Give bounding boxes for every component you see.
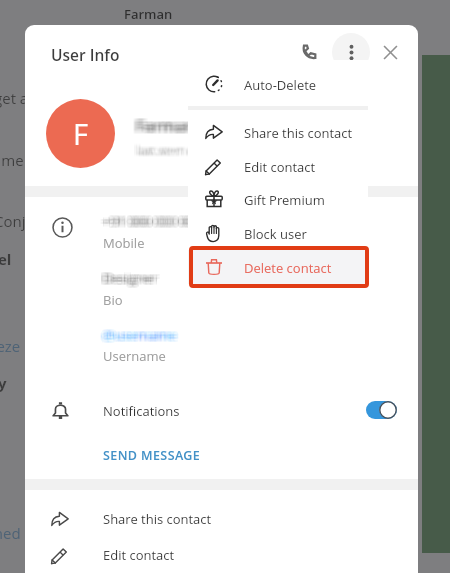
staticText: Designer — [102, 270, 156, 288]
staticText: Farman Ali — [134, 116, 218, 138]
staticText: last seen recently — [137, 141, 234, 157]
staticText: @username — [106, 328, 180, 346]
staticText: Designer — [102, 271, 156, 289]
button[interactable]: Edit contact — [25, 537, 418, 573]
staticText: +91 000 000 00 — [100, 210, 192, 228]
staticText: last seen recently — [139, 143, 236, 159]
staticText: last seen recently — [135, 144, 232, 160]
staticText: last seen recently — [139, 141, 236, 157]
staticText: Farman Ali — [136, 116, 220, 138]
staticText: Farman Ali — [139, 114, 223, 136]
button[interactable]: Delete contact — [188, 250, 368, 284]
staticText: +91 000 000 00 — [104, 212, 196, 230]
staticText: +91 000 000 00 — [102, 214, 194, 232]
staticText: +91 000 000 00 — [100, 214, 192, 232]
staticText: @username — [101, 327, 175, 345]
button[interactable]: More options — [332, 33, 370, 71]
button[interactable]: Block user — [188, 216, 368, 250]
staticText: Designer — [101, 267, 155, 285]
button[interactable]: Auto-Delete — [188, 67, 368, 101]
staticText: last seen recently — [139, 142, 236, 158]
button[interactable]: Edit contact — [188, 149, 368, 183]
staticText: ined — [0, 523, 21, 543]
staticText: last seen recently — [139, 141, 236, 157]
staticText: Designer — [106, 269, 160, 287]
button[interactable]: Notifications — [25, 387, 418, 433]
staticText: Farman Ali — [137, 115, 221, 137]
button[interactable]: Close — [372, 34, 408, 70]
staticText: +91 000 000 00 — [105, 211, 197, 229]
staticText: @username — [101, 325, 175, 343]
staticText: @username — [106, 327, 180, 345]
staticText: +91 000 000 00 — [102, 213, 194, 231]
staticText: Farman Ali — [135, 116, 219, 138]
staticText: @username — [102, 327, 176, 345]
staticText: last seen recently — [133, 142, 230, 158]
staticText: Farman Ali — [138, 116, 222, 138]
staticText: Designer — [105, 268, 159, 286]
staticText: @username — [100, 324, 174, 342]
staticText: +91 000 000 00 — [101, 213, 193, 231]
staticText: Designer — [101, 268, 155, 286]
staticText: last seen recently — [138, 144, 235, 160]
staticText: Farman Ali — [139, 116, 223, 138]
staticText: +91 000 000 00 — [102, 210, 194, 228]
staticText: @username — [103, 328, 177, 346]
staticText: Edit contact — [244, 158, 316, 176]
staticText: last seen recently — [139, 144, 236, 160]
staticText: Farman Ali — [135, 117, 219, 139]
staticText: last seen recently — [139, 140, 236, 156]
staticText: last seen recently — [138, 143, 235, 159]
staticText: Designer — [101, 268, 155, 286]
button[interactable]: Gift Premium — [188, 182, 368, 216]
staticText: +91 000 000 00 — [106, 214, 198, 232]
staticText: last seen recently — [137, 143, 234, 159]
staticText: +91 000 000 00 — [105, 210, 197, 228]
staticText: @username — [104, 324, 178, 342]
staticText: @username — [102, 325, 176, 343]
staticText: @username — [106, 325, 180, 343]
staticText: @username — [103, 326, 177, 344]
staticText: last seen recently — [135, 140, 232, 156]
staticText: Farman Ali — [137, 114, 221, 136]
staticText: Designer — [105, 270, 159, 288]
staticText: +91 000 000 00 — [106, 210, 198, 228]
button[interactable]: SEND MESSAGE — [25, 435, 418, 475]
staticText: Designer — [100, 270, 154, 288]
staticText: @username — [100, 325, 174, 343]
staticText: last seen recently — [136, 142, 233, 158]
staticText: Designer — [101, 271, 155, 289]
button[interactable]: Call — [291, 34, 327, 70]
staticText: Designer — [106, 271, 160, 289]
staticText: Designer — [103, 268, 157, 286]
staticText: el — [0, 249, 12, 269]
staticText: last seen recently — [138, 140, 235, 156]
staticText: Designer — [100, 271, 154, 289]
staticText: Designer — [103, 271, 157, 289]
staticText: Username — [103, 347, 166, 365]
button[interactable]: Share this contact — [25, 501, 418, 537]
staticText: @username — [100, 324, 174, 342]
staticText: Farman Ali — [132, 115, 216, 137]
staticText: Designer — [106, 268, 160, 286]
staticText: +91 000 000 00 — [100, 213, 192, 231]
staticText: Designer — [106, 268, 160, 286]
staticText: Farman Ali — [133, 117, 217, 139]
staticText: +91 000 000 00 — [104, 214, 196, 232]
staticText: @username — [100, 325, 174, 343]
staticText: Designer — [105, 271, 159, 289]
staticText: last seen recently — [135, 142, 232, 158]
staticText: @username — [105, 325, 179, 343]
staticText: Designer — [100, 269, 154, 287]
staticText: Farman Ali — [138, 114, 222, 136]
button[interactable]: Share this contact — [188, 115, 368, 149]
staticText: @username — [106, 324, 180, 342]
staticText: Auto-Delete — [244, 76, 317, 94]
staticText: Farman Ali — [136, 117, 220, 139]
staticText: @username — [104, 324, 178, 342]
staticText: +91 000 000 00 — [100, 213, 192, 231]
staticText: Farman Ali — [140, 115, 224, 137]
staticText: Designer — [106, 267, 160, 285]
staticText: Farman Ali — [136, 114, 220, 136]
staticText: Farman Ali — [138, 114, 222, 136]
